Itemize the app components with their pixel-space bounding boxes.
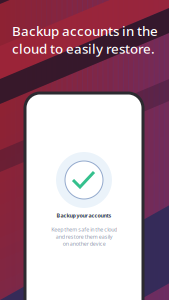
staticText: Backup accounts in the cloud to easily r… [12,22,158,57]
staticText: Keep them safe in the cloud and restore … [51,226,117,247]
staticText: Backup your accounts [56,212,111,219]
